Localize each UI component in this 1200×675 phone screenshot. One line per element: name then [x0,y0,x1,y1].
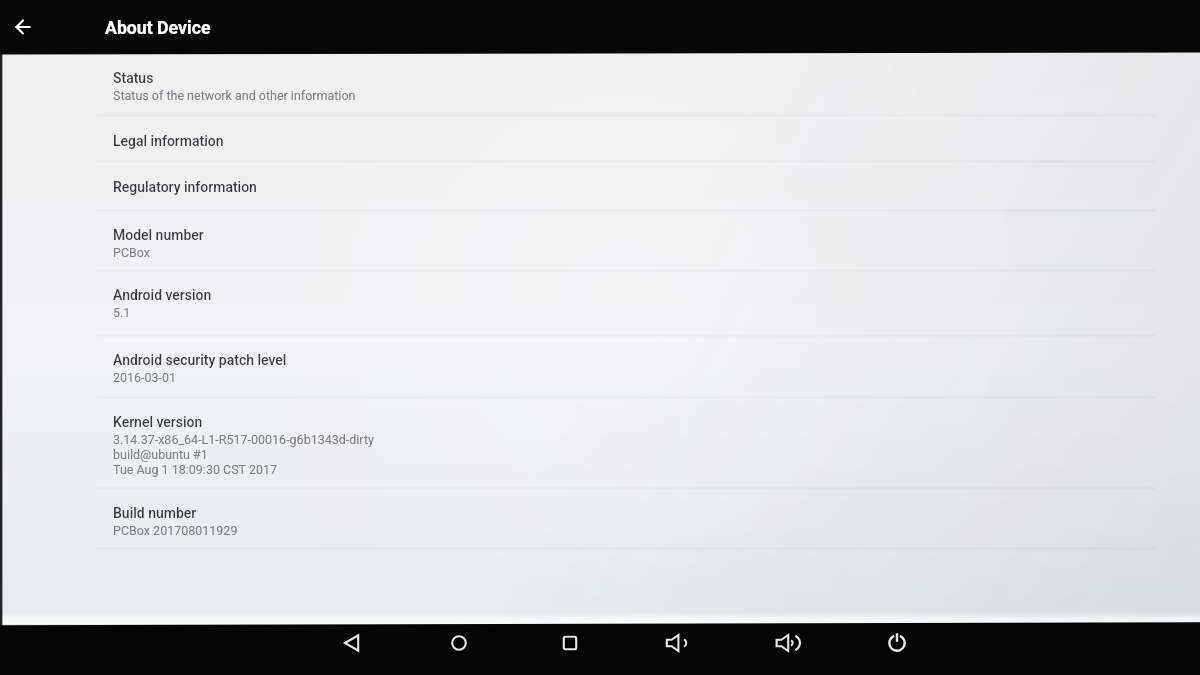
button[interactable]: Legal information [0,115,1200,161]
staticText: Android security patch level [113,352,287,368]
button[interactable]: Volume down [653,623,701,663]
staticText: Build number [113,505,197,521]
staticText: PCBox 201708011929 [113,523,238,538]
button[interactable]: Model number [0,210,1200,270]
staticText: Regulatory information [113,179,257,195]
button[interactable]: Home [435,623,483,663]
staticText: Status [113,70,154,86]
button[interactable]: Android security patch level [0,335,1200,397]
staticText: 5.1 [113,305,131,320]
button[interactable]: Back [328,623,376,663]
staticText: Model number [113,227,204,243]
staticText: About Device [105,18,211,39]
staticText: PCBox [113,245,151,260]
button[interactable]: Regulatory information [0,161,1200,210]
staticText: 2016-03-01 [113,370,177,385]
button[interactable]: Android version [0,270,1200,335]
button[interactable]: Back [1,5,45,49]
staticText: Tue Aug 1 18:09:30 CST 2017 [113,462,278,477]
staticText: Kernel version [113,414,203,430]
button[interactable]: Power [873,623,921,663]
staticText: Status of the network and other informat… [113,88,356,103]
button[interactable]: Build number [0,488,1200,548]
button[interactable]: Recent apps [546,623,594,663]
button[interactable]: Status [0,53,1200,115]
staticText: Legal information [113,133,224,149]
staticText: 3.14.37-x86_64-L1-R517-00016-g6b1343d-di… [113,432,374,447]
staticText: build@ubuntu #1 [113,447,208,462]
button[interactable]: Volume up [763,623,811,663]
staticText: Android version [113,287,212,303]
button[interactable]: Kernel version [0,397,1200,488]
